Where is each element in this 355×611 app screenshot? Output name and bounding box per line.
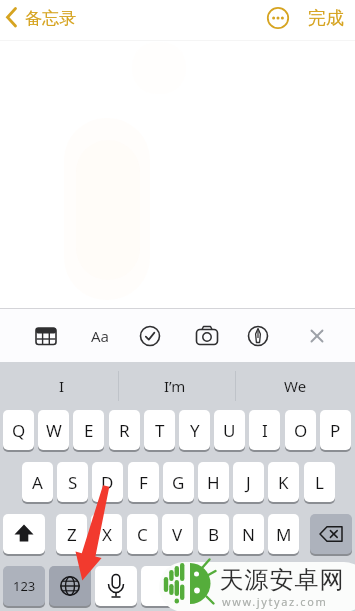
button[interactable]: Y <box>179 410 210 450</box>
button[interactable]: P <box>320 410 351 450</box>
button[interactable] <box>307 566 352 606</box>
button[interactable]: F <box>128 462 159 502</box>
staticText: Z <box>67 523 77 546</box>
button[interactable]: X <box>91 514 122 554</box>
staticText: D <box>101 471 114 494</box>
button[interactable]: B <box>198 514 229 554</box>
button[interactable]: V <box>162 514 193 554</box>
staticText: L <box>315 471 324 494</box>
button[interactable]: D <box>92 462 123 502</box>
button[interactable]: 完成 <box>300 0 355 36</box>
button[interactable]: 备忘录 <box>0 0 120 36</box>
button[interactable] <box>32 322 60 350</box>
button[interactable]: We <box>240 366 350 406</box>
staticText: Q <box>12 419 26 442</box>
staticText: N <box>242 523 255 546</box>
button[interactable]: E <box>73 410 104 450</box>
button[interactable] <box>141 566 303 606</box>
staticText: E <box>84 419 94 442</box>
staticText: B <box>208 523 220 546</box>
staticText: H <box>207 471 220 494</box>
button[interactable] <box>49 566 91 606</box>
button[interactable]: S <box>57 462 88 502</box>
button[interactable]: Z <box>56 514 87 554</box>
button[interactable] <box>303 322 331 350</box>
button[interactable] <box>95 566 137 606</box>
staticText: 备忘录 <box>25 8 76 29</box>
staticText: I <box>59 376 65 396</box>
button[interactable]: 123 <box>3 566 45 606</box>
staticText: I’m <box>164 376 186 396</box>
button[interactable] <box>193 322 221 350</box>
button[interactable] <box>3 514 45 554</box>
staticText: G <box>172 471 185 494</box>
button[interactable]: C <box>127 514 158 554</box>
button[interactable]: M <box>268 514 299 554</box>
button[interactable] <box>266 6 290 30</box>
staticText: M <box>276 523 292 546</box>
staticText: 天源安卓网 <box>219 565 344 595</box>
staticText: V <box>172 523 183 546</box>
button[interactable]: W <box>38 410 69 450</box>
staticText: S <box>68 471 78 494</box>
button[interactable]: T <box>144 410 175 450</box>
staticText: 完成 <box>308 7 344 30</box>
button[interactable]: K <box>268 462 299 502</box>
staticText: R <box>119 419 130 442</box>
button[interactable]: U <box>214 410 245 450</box>
staticText: We <box>284 376 307 396</box>
button[interactable] <box>136 322 164 350</box>
staticText: A <box>32 471 43 494</box>
staticText: P <box>330 419 341 442</box>
button[interactable]: I’m <box>123 366 227 406</box>
button[interactable]: I <box>10 366 114 406</box>
button[interactable]: N <box>233 514 264 554</box>
staticText: O <box>294 419 308 442</box>
button[interactable]: H <box>198 462 229 502</box>
staticText: www.jytyaz.com <box>222 594 328 609</box>
button[interactable]: J <box>233 462 264 502</box>
button[interactable]: Aa <box>84 322 116 350</box>
button[interactable]: G <box>163 462 194 502</box>
button[interactable]: Q <box>3 410 34 450</box>
staticText: W <box>46 419 62 442</box>
staticText: T <box>155 419 165 442</box>
staticText: Y <box>190 419 200 442</box>
button[interactable] <box>244 322 272 350</box>
staticText: C <box>137 523 148 546</box>
staticText: X <box>102 523 112 546</box>
button[interactable]: I <box>249 410 280 450</box>
button[interactable]: R <box>109 410 140 450</box>
button[interactable]: L <box>304 462 335 502</box>
button[interactable]: A <box>22 462 53 502</box>
staticText: Aa <box>91 326 110 346</box>
button[interactable]: O <box>285 410 316 450</box>
staticText: K <box>278 471 289 494</box>
staticText: J <box>246 471 251 494</box>
staticText: I <box>262 419 268 442</box>
staticText: 123 <box>13 577 36 595</box>
staticText: U <box>223 419 236 442</box>
button[interactable] <box>310 514 352 554</box>
staticText: F <box>139 471 148 494</box>
